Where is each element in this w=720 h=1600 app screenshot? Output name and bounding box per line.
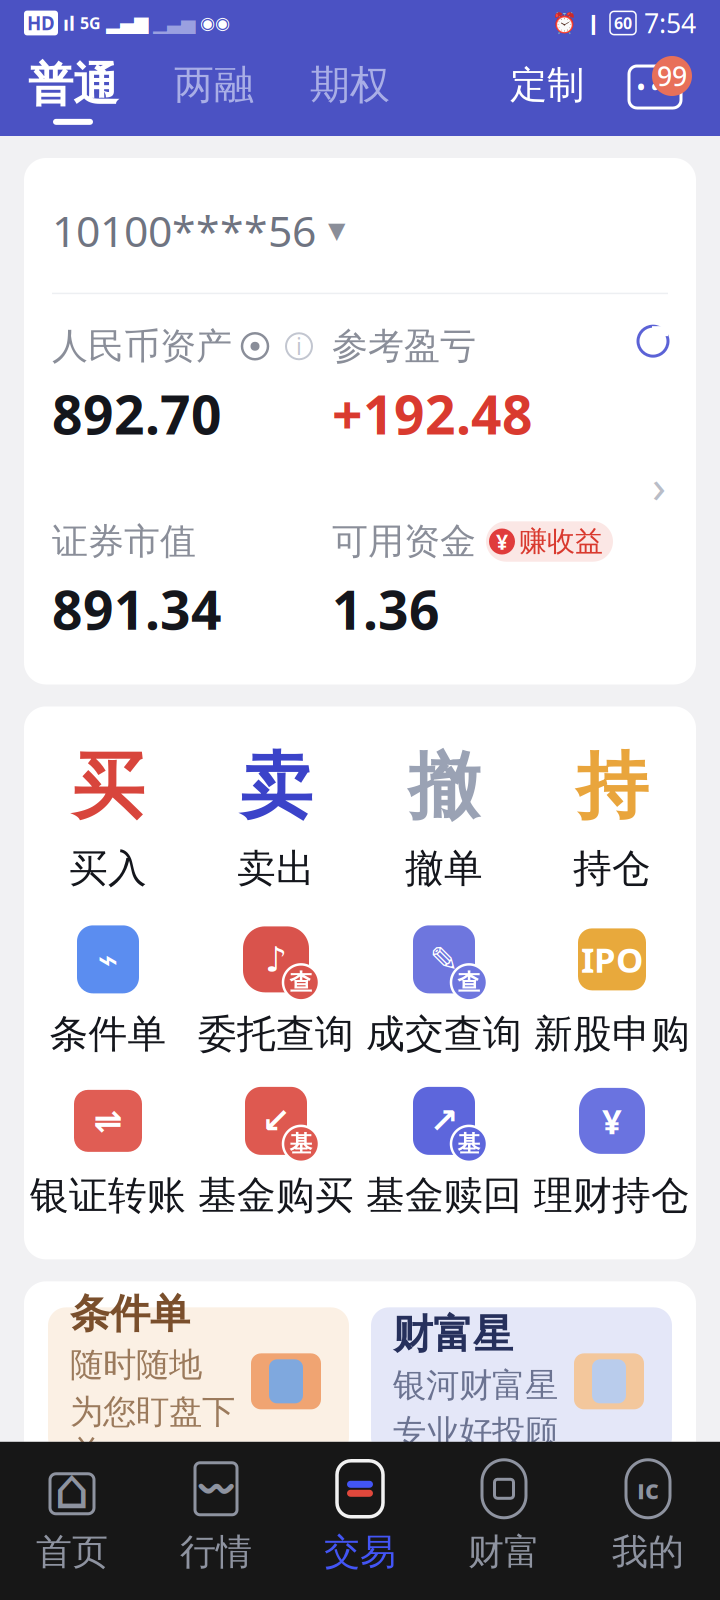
staticText: ⌂: [54, 1457, 90, 1521]
staticText: ⏰: [552, 12, 577, 34]
staticText: ¥: [602, 1098, 622, 1144]
button[interactable]: ↗: [360, 1084, 528, 1219]
staticText: 撤: [408, 742, 480, 831]
staticText: 持仓: [573, 845, 651, 892]
staticText: 条件单: [49, 1010, 166, 1058]
staticText: ıl: [63, 10, 75, 36]
staticText: 银河财富星: [393, 1365, 558, 1406]
button[interactable]: ♪: [192, 922, 360, 1058]
button[interactable]: 消息: [618, 56, 692, 126]
button[interactable]: 期权: [310, 60, 390, 121]
staticText: 专业好投顾: [393, 1412, 558, 1453]
staticText: ▁▃▅: [153, 12, 195, 34]
button[interactable]: ✎: [360, 922, 528, 1058]
staticText: ♪: [265, 940, 287, 979]
staticText: +192.48: [332, 378, 533, 449]
staticText: 可用资金: [332, 519, 476, 564]
button[interactable]: 财富: [432, 1460, 576, 1574]
staticText: 为您盯盘下单: [70, 1391, 235, 1473]
staticText: 891.34: [52, 574, 222, 644]
button[interactable]: 买: [24, 742, 192, 892]
staticText: 理财持仓: [534, 1172, 690, 1219]
staticText: ✎: [429, 940, 458, 979]
button[interactable]: 普通: [28, 57, 118, 125]
staticText: ıc: [637, 1471, 659, 1506]
staticText: ¥: [496, 527, 508, 556]
button[interactable]: 卖: [192, 742, 360, 892]
staticText: 卖: [240, 742, 312, 831]
staticText: 撤单: [405, 845, 483, 892]
button[interactable]: 财富星: [371, 1307, 672, 1455]
staticText: ›: [652, 455, 666, 515]
button[interactable]: ⌁: [24, 922, 192, 1058]
staticText: 基金购买: [198, 1172, 354, 1219]
staticText: 交易: [324, 1530, 396, 1574]
staticText: 基: [457, 1130, 480, 1158]
staticText: 新股申购: [534, 1010, 690, 1058]
staticText: 人民币资产: [52, 324, 232, 368]
staticText: 银证转账: [30, 1172, 186, 1219]
staticText: i: [296, 331, 302, 361]
staticText: 普通: [28, 57, 118, 113]
staticText: 7:54: [644, 5, 696, 41]
button[interactable]: ⇌: [24, 1084, 192, 1219]
staticText: 5G: [80, 12, 101, 34]
staticText: 财富星: [393, 1310, 513, 1359]
staticText: 持: [576, 742, 648, 831]
button[interactable]: 定制: [510, 62, 584, 120]
staticText: 10100****56: [52, 202, 316, 259]
button[interactable]: 交易: [288, 1460, 432, 1574]
staticText: 证券市值: [52, 519, 196, 564]
staticText: 买: [72, 742, 144, 831]
staticText: 定制: [510, 62, 584, 108]
staticText: 赚收益: [519, 524, 603, 559]
staticText: 两融: [174, 60, 254, 109]
staticText: 查: [289, 968, 312, 996]
button[interactable]: IPO: [528, 922, 696, 1058]
staticText: ◉◉: [200, 13, 230, 33]
staticText: 行情: [180, 1530, 252, 1574]
staticText: 1.36: [332, 574, 440, 644]
staticText: ↙: [261, 1101, 290, 1140]
staticText: 首页: [36, 1530, 108, 1574]
staticText: ⌁: [97, 940, 118, 979]
button[interactable]: 撤: [360, 742, 528, 892]
staticText: HD: [27, 11, 55, 35]
staticText: 〰: [194, 1469, 238, 1509]
staticText: 查: [457, 968, 480, 996]
staticText: 成交查询: [366, 1010, 522, 1058]
staticText: IPO: [581, 936, 643, 982]
staticText: 随时随地: [70, 1344, 202, 1385]
staticText: 条件单: [70, 1289, 190, 1338]
button[interactable]: ⌂: [0, 1460, 144, 1574]
staticText: 卖出: [237, 845, 315, 892]
button[interactable]: 10100****56: [24, 158, 696, 684]
staticText: 买入: [69, 845, 147, 892]
staticText: ▼: [328, 217, 345, 243]
staticText: 股票交易: [70, 1549, 262, 1600]
staticText: 我的: [612, 1530, 684, 1574]
staticText: ❙: [585, 12, 602, 34]
button[interactable]: 条件单: [48, 1307, 349, 1455]
staticText: 参考盈亏: [332, 324, 476, 368]
staticText: 基金赎回: [366, 1172, 522, 1219]
staticText: 基: [289, 1130, 312, 1158]
staticText: 99: [657, 58, 687, 94]
button[interactable]: ¥: [528, 1084, 696, 1219]
staticText: ↗: [429, 1101, 458, 1140]
button[interactable]: 持: [528, 742, 696, 892]
button[interactable]: ıc: [576, 1460, 720, 1574]
button[interactable]: 〰: [144, 1460, 288, 1574]
staticText: 委托查询: [198, 1010, 354, 1058]
staticText: ▂▄▆: [106, 12, 148, 34]
staticText: ⇌: [93, 1101, 122, 1140]
button[interactable]: 两融: [174, 60, 254, 121]
staticText: 892.70: [52, 378, 222, 449]
staticText: 期权: [310, 60, 390, 109]
staticText: 60: [614, 12, 632, 34]
staticText: 财富: [468, 1530, 540, 1574]
button[interactable]: ↙: [192, 1084, 360, 1219]
staticText: • • •: [637, 73, 673, 101]
